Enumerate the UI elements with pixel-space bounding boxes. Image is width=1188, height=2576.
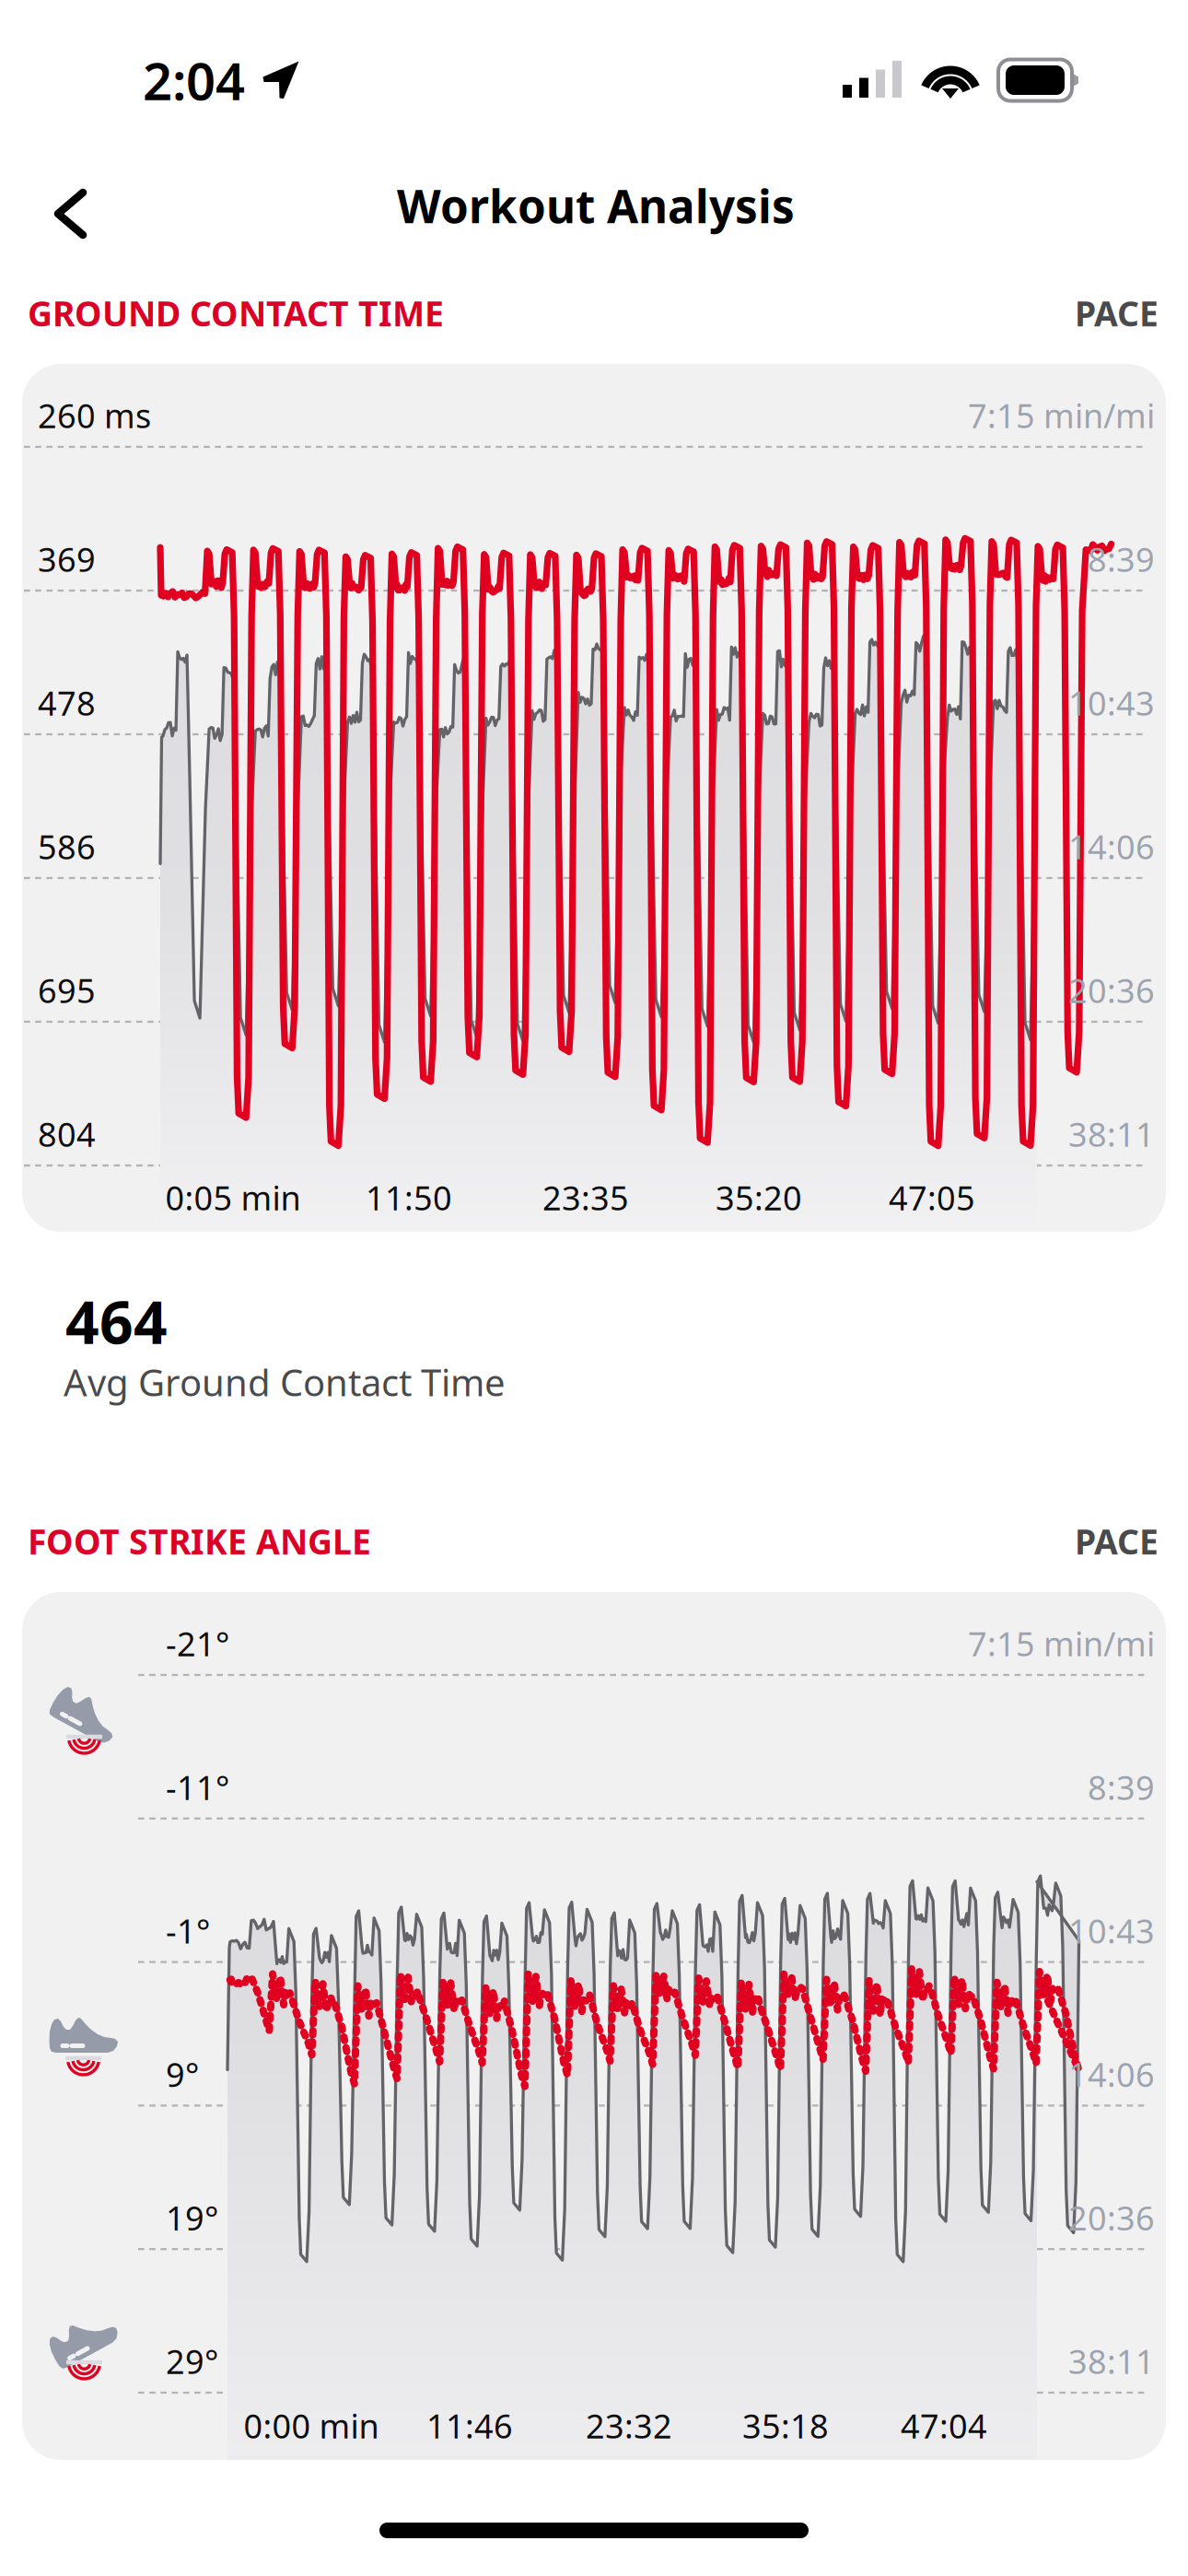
staticText: 20:36	[1068, 2196, 1155, 2240]
staticText: 10:43	[1068, 681, 1155, 725]
staticText: 35:20	[716, 1176, 802, 1220]
staticText: 464	[65, 1282, 168, 1360]
staticText: 2:04	[143, 46, 245, 114]
staticText: 20:36	[1068, 968, 1155, 1012]
staticText: 7:15 min/mi	[968, 393, 1155, 437]
staticText: 260 ms	[38, 393, 151, 437]
staticText: -1°	[166, 1909, 210, 1953]
staticText: 35:18	[742, 2404, 829, 2448]
staticText: 369	[38, 537, 96, 581]
staticText: 804	[38, 1112, 96, 1156]
staticText: 14:06	[1068, 825, 1155, 869]
staticText: 47:05	[889, 1176, 975, 1220]
staticText: 8:39	[1088, 1765, 1155, 1809]
staticText: 38:11	[1068, 1112, 1155, 1156]
staticText: 38:11	[1068, 2339, 1155, 2383]
staticText: 29°	[166, 2339, 218, 2383]
staticText: 19°	[166, 2196, 218, 2240]
staticText: PACE	[1075, 290, 1159, 336]
staticText: 695	[38, 968, 96, 1012]
staticText: 11:46	[426, 2404, 513, 2448]
staticText: 10:43	[1068, 1909, 1155, 1953]
staticText: Avg Ground Contact Time	[64, 1357, 506, 1406]
staticText: -21°	[166, 1622, 229, 1666]
staticText: -11°	[166, 1765, 229, 1809]
staticText: Workout Analysis	[397, 175, 795, 236]
staticText: 11:50	[366, 1176, 452, 1220]
staticText: 23:32	[586, 2404, 672, 2448]
staticText: 47:04	[901, 2404, 987, 2448]
staticText: FOOT STRIKE ANGLE	[28, 1518, 371, 1564]
staticText: PACE	[1075, 1518, 1159, 1564]
staticText: 7:15 min/mi	[968, 1622, 1155, 1666]
staticText: 0:00 min	[244, 2404, 379, 2448]
staticText: GROUND CONTACT TIME	[28, 290, 444, 336]
staticText: 586	[38, 825, 96, 869]
staticText: 23:35	[542, 1176, 629, 1220]
staticText: 0:05 min	[165, 1176, 301, 1220]
staticText: 14:06	[1068, 2052, 1155, 2096]
button[interactable]: Back	[50, 180, 134, 248]
staticText: 478	[38, 681, 96, 725]
staticText: 9°	[166, 2052, 199, 2096]
staticText: 8:39	[1088, 537, 1155, 581]
